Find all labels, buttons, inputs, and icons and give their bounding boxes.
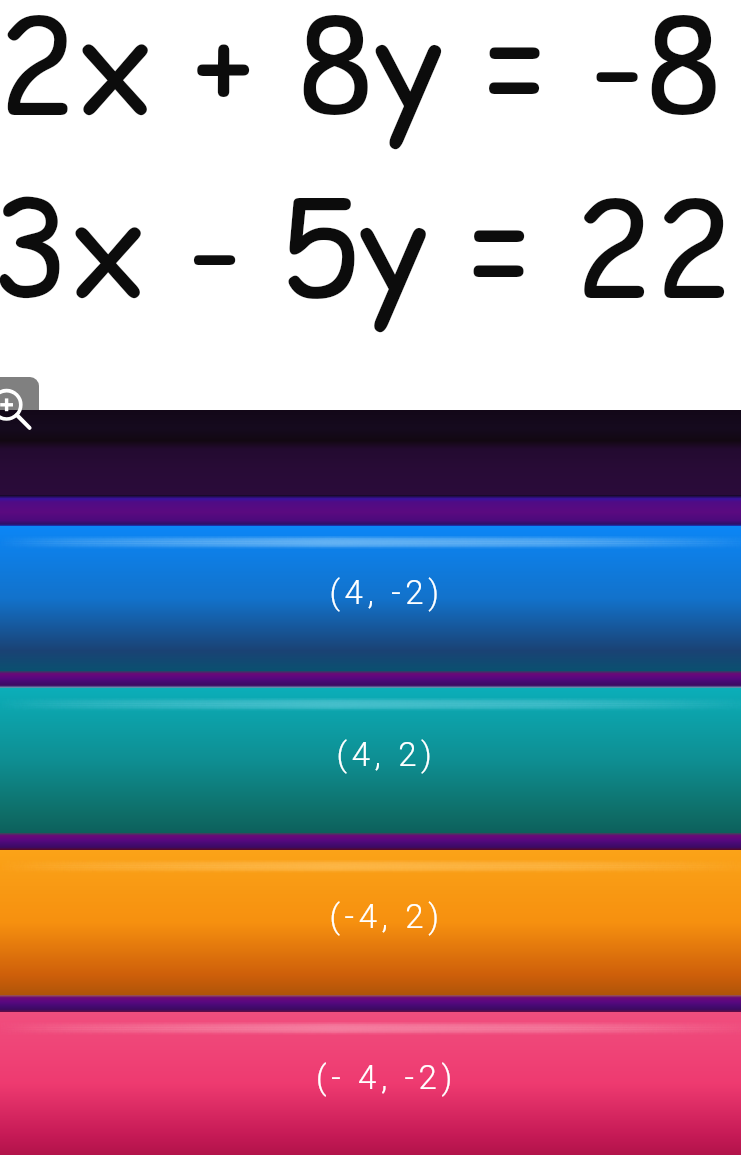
staticText: 2x + 8y = -8 (0, 0, 724, 157)
button[interactable]: (4, 2) (0, 688, 741, 833)
button[interactable]: Zoom in (0, 386, 31, 426)
button[interactable]: Zoom in (0, 377, 39, 410)
button[interactable]: (4, -2) (0, 526, 741, 671)
staticText: (- 4, -2) (316, 1058, 457, 1097)
button[interactable]: (-4, 2) (0, 850, 741, 995)
staticText: (4, 2) (336, 735, 437, 774)
button[interactable]: (- 4, -2) (0, 1012, 741, 1155)
staticText: (-4, 2) (329, 897, 444, 936)
staticText: (4, -2) (329, 573, 444, 612)
staticText: 3x - 5y = 22 (0, 157, 731, 340)
